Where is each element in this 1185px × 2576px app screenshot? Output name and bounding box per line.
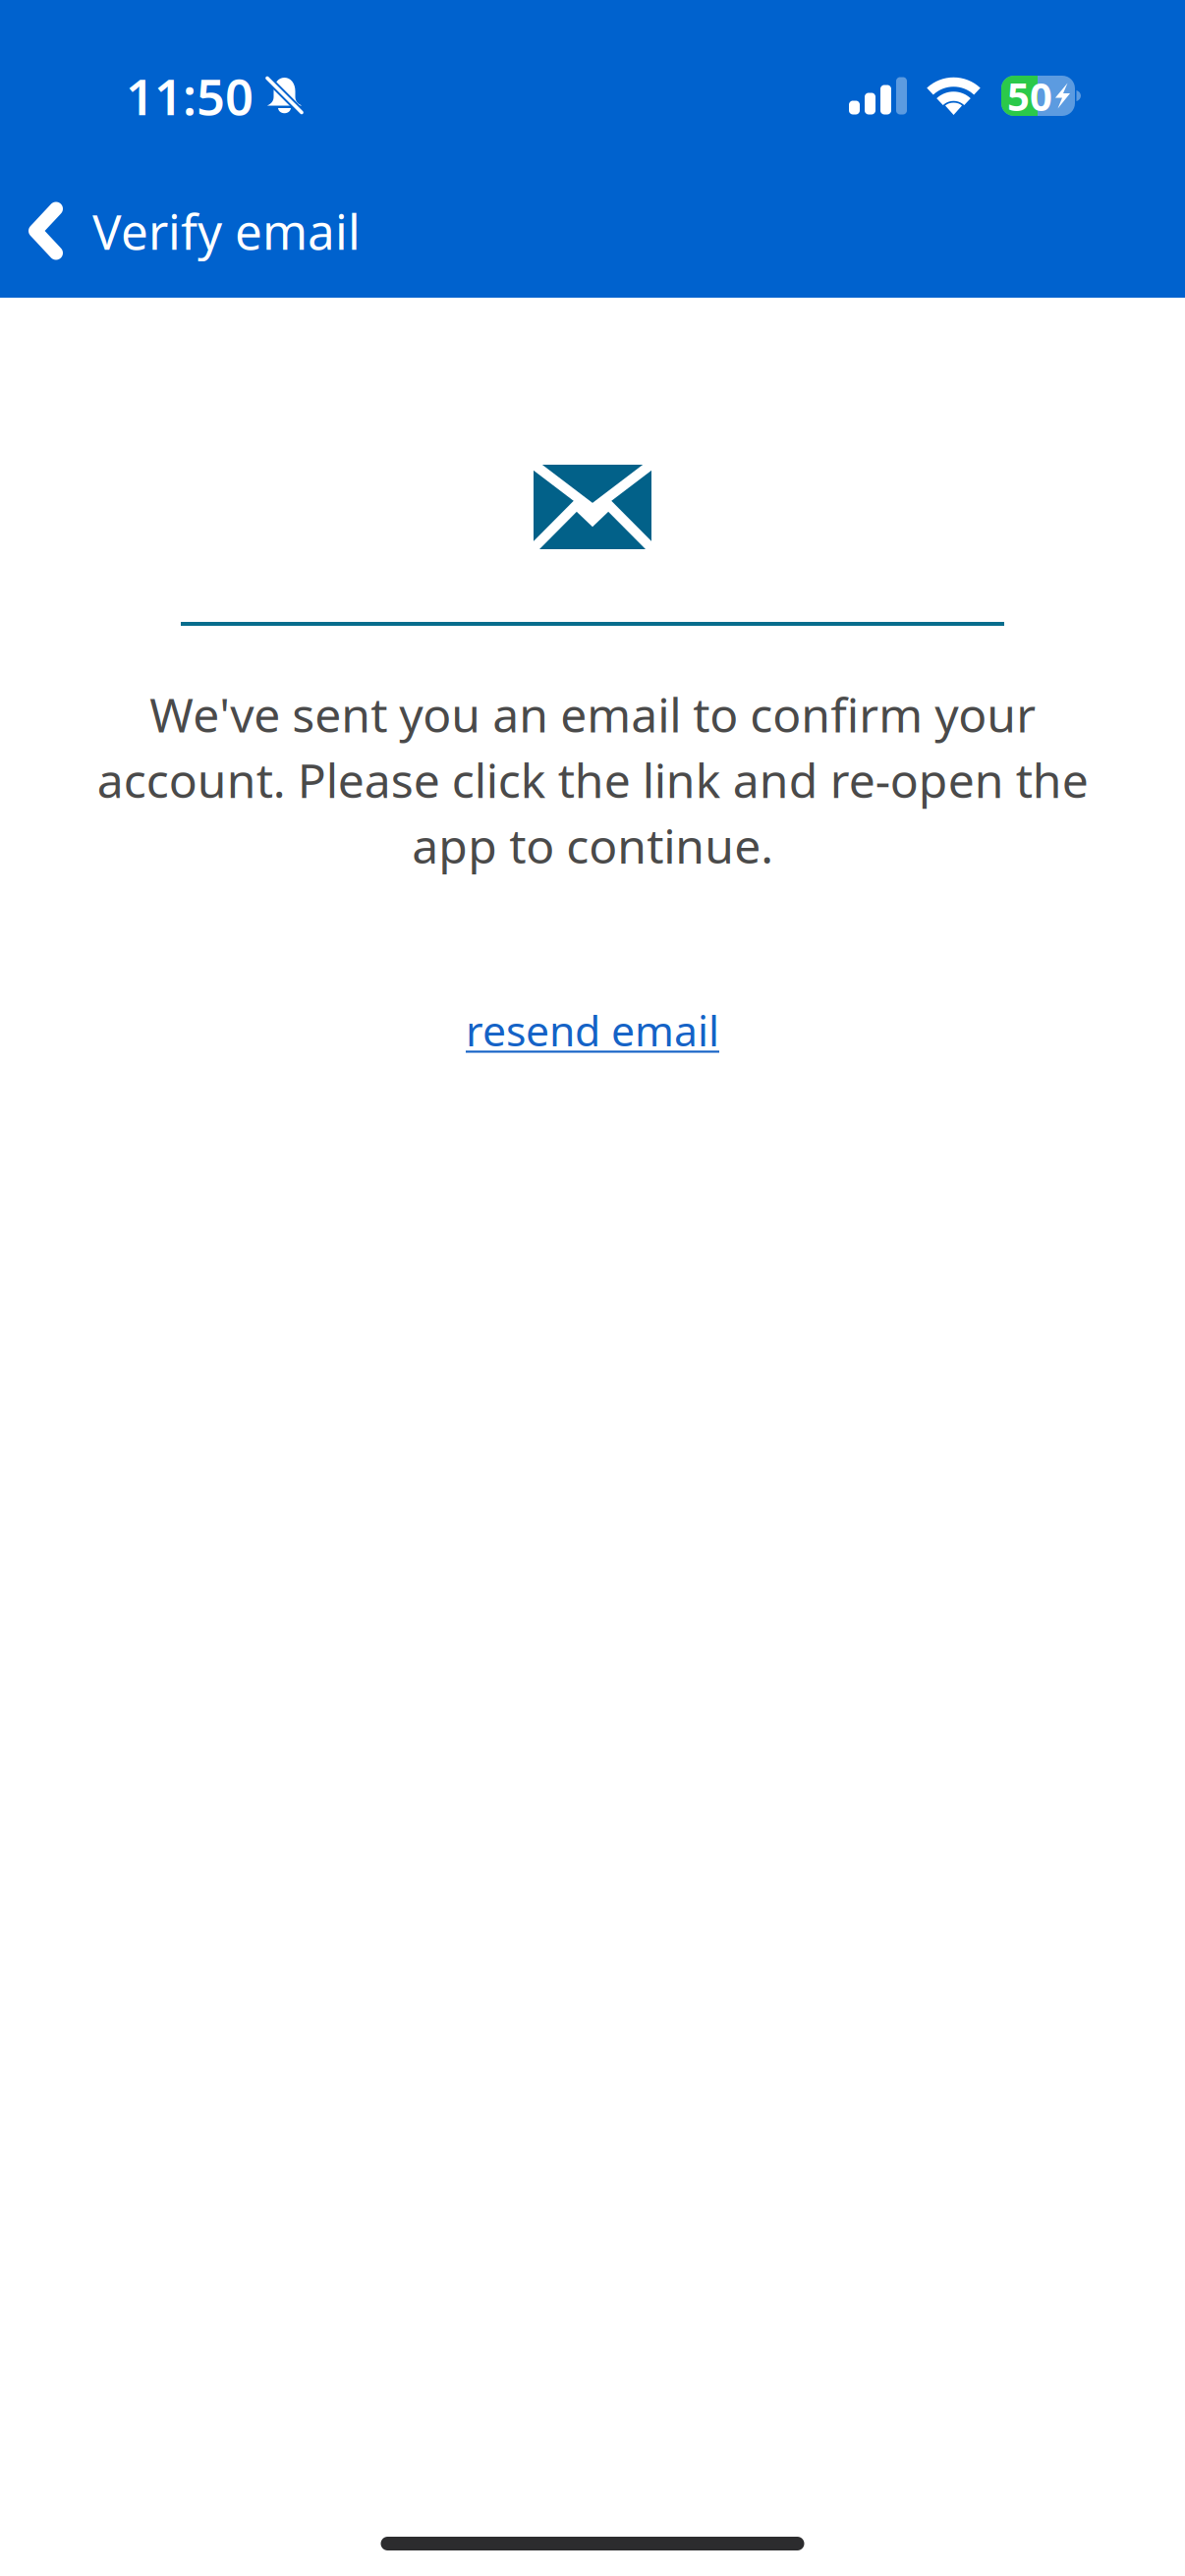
staticText: 11:50: [126, 63, 254, 129]
staticText: 50: [1007, 70, 1052, 122]
staticText: We've sent you an email to confirm your …: [97, 683, 1088, 877]
staticText: Verify email: [92, 199, 361, 263]
button[interactable]: resend email: [446, 989, 739, 1072]
button[interactable]: Verify email: [0, 187, 384, 275]
staticText: resend email: [466, 1002, 719, 1058]
